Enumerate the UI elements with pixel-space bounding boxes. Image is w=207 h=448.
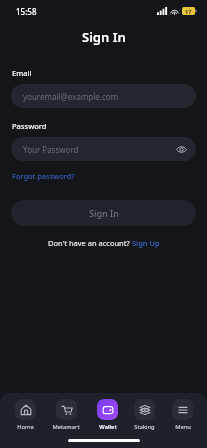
button[interactable]: youremail@example.com: [11, 84, 196, 108]
button[interactable]: Sign In: [11, 200, 196, 226]
staticText: 17: [185, 8, 192, 15]
button[interactable]: Metamart: [50, 398, 82, 432]
staticText: Forgot password?: [12, 171, 75, 181]
staticText: Home: [17, 423, 34, 431]
staticText: Email: [12, 68, 32, 78]
staticText: Staking: [134, 423, 155, 431]
button[interactable]: Menu: [170, 398, 195, 432]
staticText: Your Password: [23, 144, 79, 155]
staticText: Sign In: [89, 207, 119, 219]
button[interactable]: Wallet: [95, 398, 120, 432]
button[interactable]: Show password: [174, 142, 188, 156]
button[interactable]: Staking: [132, 398, 157, 432]
staticText: Metamart: [52, 423, 80, 431]
button[interactable]: Home: [13, 398, 38, 432]
button[interactable]: Forgot password?: [11, 169, 76, 183]
staticText: Sign In: [82, 28, 126, 46]
staticText: Sign Up: [132, 238, 160, 248]
button[interactable]: Your Password: [11, 137, 196, 161]
button[interactable]: Sign Up: [132, 238, 160, 248]
staticText: Wallet: [99, 423, 117, 431]
staticText: Password: [12, 121, 47, 131]
staticText: 15:58: [16, 6, 37, 17]
staticText: youremail@example.com: [23, 91, 119, 102]
staticText: Menu: [175, 423, 191, 431]
staticText: Don't have an account?: [48, 238, 132, 248]
